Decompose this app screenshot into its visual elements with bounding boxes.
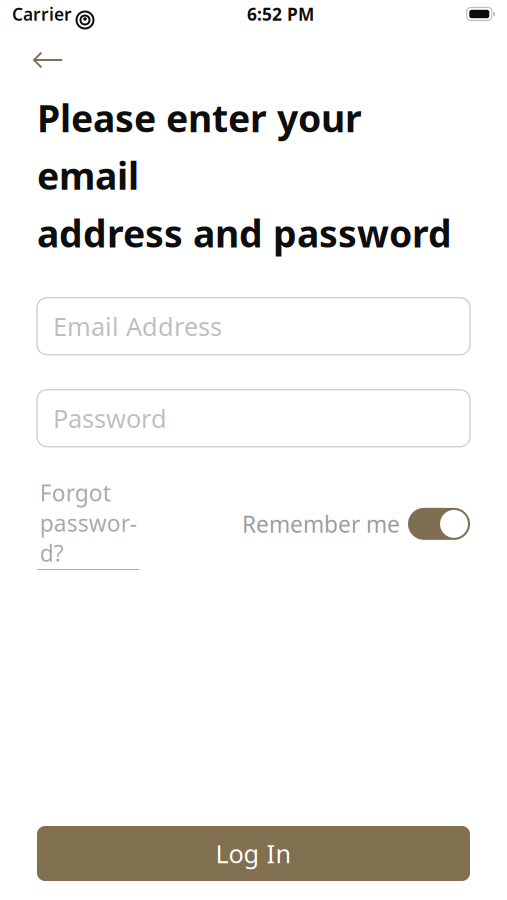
staticText: Please enter your email address and pass…	[37, 93, 452, 258]
button[interactable]: Remember me	[242, 508, 470, 540]
staticText: Password	[53, 401, 167, 435]
button[interactable]: Forgot password?	[37, 478, 139, 570]
staticText: 6:52 PM	[247, 2, 314, 25]
staticText: ←	[31, 36, 65, 82]
staticText: Remember me	[242, 509, 400, 539]
staticText: Forgot password?	[40, 478, 137, 568]
staticText: Carrier	[12, 2, 72, 25]
staticText: Log In	[215, 837, 291, 870]
button[interactable]: Log In	[37, 826, 470, 881]
staticText: Email Address	[53, 309, 222, 343]
button[interactable]: Back	[26, 39, 70, 79]
